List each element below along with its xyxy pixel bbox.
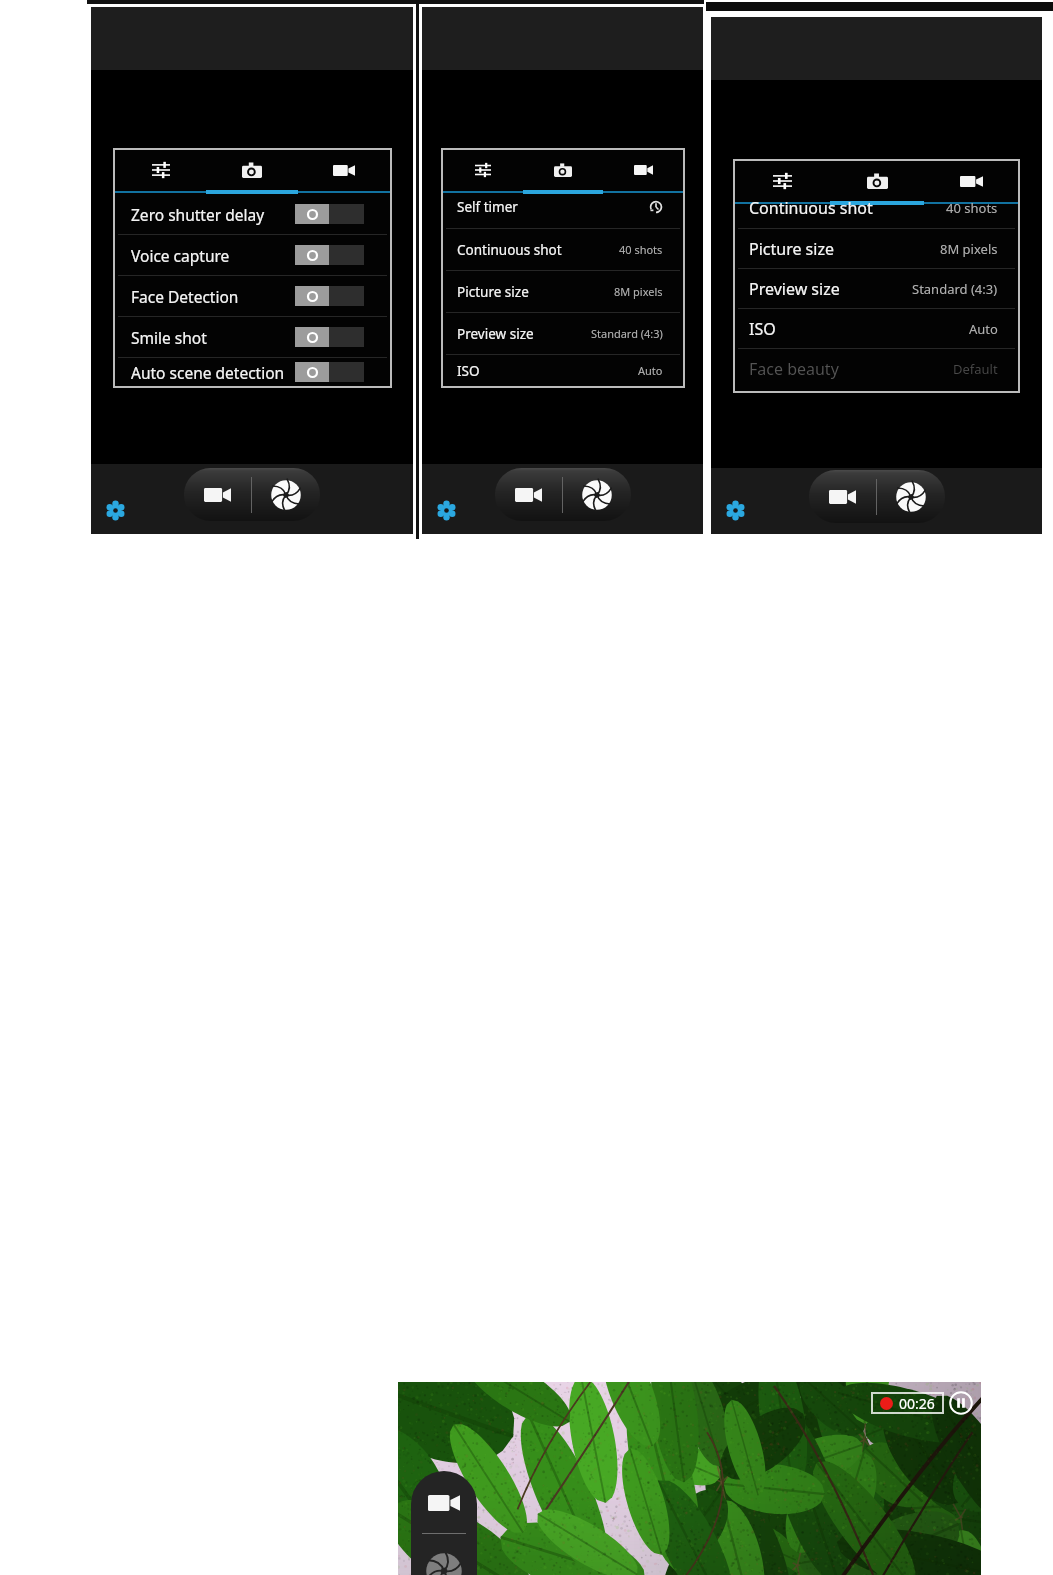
staticText: 40 shots — [619, 242, 663, 257]
button[interactable]: Video settings — [298, 150, 390, 190]
button[interactable]: Video settings — [924, 161, 1018, 201]
staticText: Preview size — [749, 278, 840, 300]
button[interactable]: Settings — [721, 496, 749, 524]
staticText: Continuous shot — [457, 241, 562, 259]
staticText: Smile shot — [131, 327, 207, 348]
staticText: 40 shots — [946, 199, 998, 217]
button[interactable]: Continuous shot — [735, 205, 1018, 228]
button[interactable]: Video settings — [603, 150, 683, 190]
staticText: Preview size — [457, 325, 534, 343]
button[interactable]: ISO — [443, 355, 683, 386]
button[interactable]: Self timer — [443, 194, 683, 228]
button[interactable]: Settings — [101, 496, 129, 524]
button[interactable]: Take photo — [252, 468, 320, 521]
staticText: ISO — [457, 362, 480, 380]
staticText: Picture size — [457, 283, 529, 301]
button[interactable]: Face Detection — [115, 276, 390, 316]
button[interactable]: Voice capture — [115, 235, 390, 275]
staticText: Auto — [969, 320, 998, 338]
button[interactable]: Take photo — [877, 470, 945, 523]
staticText: Self timer — [457, 198, 518, 216]
staticText: Picture size — [749, 238, 834, 260]
staticText: 8M pixels — [940, 240, 998, 258]
button[interactable]: Record video — [495, 468, 562, 521]
button[interactable]: General settings — [115, 150, 206, 190]
button[interactable]: Take photo — [424, 1551, 464, 1575]
button[interactable]: Preview size — [735, 269, 1018, 308]
staticText: Default — [953, 360, 998, 378]
button[interactable]: Face beauty — [735, 349, 1018, 388]
button[interactable]: Auto scene detection — [115, 358, 390, 386]
staticText: Auto — [638, 363, 663, 378]
staticText: Zero shutter delay — [131, 204, 265, 225]
button[interactable]: General settings — [735, 161, 830, 201]
button[interactable]: Take photo — [563, 468, 631, 521]
button[interactable]: Continuous shot — [443, 229, 683, 270]
staticText: Continuous shot — [749, 197, 873, 219]
staticText: Standard (4:3) — [591, 326, 663, 341]
staticText: ISO — [749, 318, 776, 340]
staticText: Voice capture — [131, 245, 230, 266]
staticText: 00:26 — [899, 1394, 935, 1413]
button[interactable]: Camera settings — [830, 161, 924, 201]
button[interactable]: ISO — [735, 309, 1018, 348]
button[interactable]: Camera settings — [206, 150, 298, 190]
button[interactable]: Picture size — [735, 229, 1018, 268]
staticText: Face Detection — [131, 286, 239, 307]
button[interactable]: Settings — [432, 496, 460, 524]
button[interactable]: Pause recording — [949, 1391, 973, 1415]
button[interactable]: Picture size — [443, 271, 683, 312]
button[interactable]: General settings — [443, 150, 523, 190]
button[interactable]: Smile shot — [115, 317, 390, 357]
staticText: Standard (4:3) — [912, 280, 998, 298]
button[interactable]: Camera settings — [523, 150, 603, 190]
staticText: Auto scene detection — [131, 362, 285, 383]
button[interactable]: Record video — [184, 468, 251, 521]
button[interactable]: Record video — [422, 1489, 466, 1517]
button[interactable]: Zero shutter delay — [115, 194, 390, 234]
button[interactable]: Preview size — [443, 313, 683, 354]
button[interactable]: Record video — [809, 470, 876, 523]
staticText: Face beauty — [749, 358, 839, 380]
staticText: 8M pixels — [614, 284, 663, 299]
